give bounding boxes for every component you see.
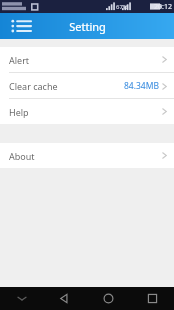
staticText: Alert	[9, 54, 30, 66]
button[interactable]: Hide	[0, 287, 43, 310]
button[interactable]: About	[0, 143, 174, 168]
staticText: Setting	[69, 19, 106, 34]
button[interactable]: Help	[0, 99, 174, 124]
button[interactable]: Home	[86, 287, 130, 310]
button[interactable]: Recents	[130, 287, 174, 310]
button[interactable]: Menu	[9, 16, 33, 36]
staticText: 67%	[116, 3, 128, 11]
staticText: 20:12	[154, 2, 172, 12]
staticText: About	[9, 150, 35, 162]
staticText: Clear cache	[9, 80, 58, 92]
staticText: Help	[9, 106, 29, 118]
staticText: 84.34MB	[124, 80, 159, 92]
button[interactable]: Back	[43, 287, 86, 310]
button[interactable]: Clear cache	[0, 73, 174, 98]
button[interactable]: Alert	[0, 47, 174, 72]
